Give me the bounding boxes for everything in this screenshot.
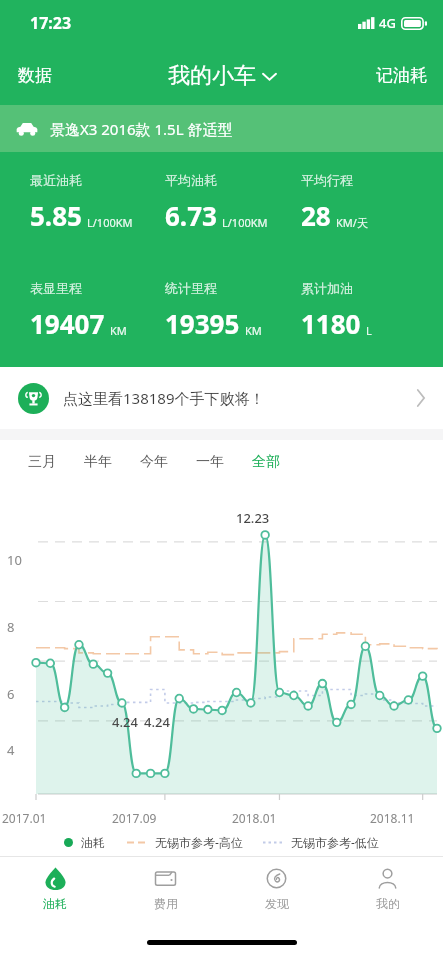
staticText: 累计加油 xyxy=(301,280,353,296)
staticText: 19407 xyxy=(30,306,105,341)
button[interactable]: 油耗 xyxy=(0,857,110,924)
staticText: L/100KM xyxy=(222,215,268,230)
staticText: 4G xyxy=(379,14,396,32)
button[interactable]: 点这里看138189个手下败将！ xyxy=(0,367,443,429)
staticText: 4.24 xyxy=(144,713,170,731)
staticText: 费用 xyxy=(154,896,178,911)
staticText: KM xyxy=(110,323,127,338)
staticText: 2017.01 xyxy=(2,810,47,826)
staticText: 发现 xyxy=(265,896,289,911)
staticText: 无锡市参考-高位 xyxy=(155,834,243,850)
staticText: 19395 xyxy=(165,306,240,341)
staticText: 油耗 xyxy=(81,835,105,850)
button[interactable]: 景逸X3 2016款 1.5L 舒适型 xyxy=(0,105,443,152)
button[interactable]: 三月 xyxy=(19,444,65,480)
button[interactable]: 一年 xyxy=(187,444,233,480)
staticText: 油耗 xyxy=(43,896,67,911)
staticText: 2017.09 xyxy=(112,810,157,826)
button[interactable]: 半年 xyxy=(75,444,121,480)
staticText: 6 xyxy=(7,685,15,703)
staticText: 数据 xyxy=(18,65,52,86)
staticText: 表显里程 xyxy=(30,280,82,296)
staticText: 我的 xyxy=(376,896,400,911)
staticText: 点这里看138189个手下败将！ xyxy=(63,388,265,408)
staticText: 4.24 xyxy=(112,713,138,731)
staticText: 17:23 xyxy=(30,12,72,34)
staticText: 2018.11 xyxy=(370,810,415,826)
staticText: 12.23 xyxy=(236,509,270,527)
button[interactable]: 我的小车 xyxy=(158,54,286,98)
staticText: 无锡市参考-低位 xyxy=(291,834,379,850)
staticText: 景逸X3 2016款 1.5L 舒适型 xyxy=(50,119,233,139)
staticText: 今年 xyxy=(140,453,168,471)
staticText: 1180 xyxy=(301,306,361,341)
staticText: 全部 xyxy=(252,453,280,471)
staticText: 半年 xyxy=(84,453,112,471)
staticText: 统计里程 xyxy=(165,280,217,296)
staticText: 28 xyxy=(301,198,331,233)
staticText: 记油耗 xyxy=(376,65,427,86)
button[interactable]: 全部 xyxy=(243,444,289,480)
staticText: KM/天 xyxy=(336,215,368,230)
button[interactable]: 费用 xyxy=(110,857,221,924)
staticText: 三月 xyxy=(28,453,56,471)
staticText: 最近油耗 xyxy=(30,172,82,188)
staticText: L/100KM xyxy=(87,215,133,230)
button[interactable]: 我的 xyxy=(332,857,443,924)
staticText: 8 xyxy=(7,618,15,636)
staticText: 平均行程 xyxy=(301,172,353,188)
staticText: 4 xyxy=(7,741,15,759)
button[interactable]: 记油耗 xyxy=(360,53,443,98)
staticText: 2018.01 xyxy=(232,810,277,826)
staticText: 我的小车 xyxy=(168,62,256,90)
button[interactable]: 发现 xyxy=(221,857,332,924)
staticText: 平均油耗 xyxy=(165,172,217,188)
button[interactable]: 数据 xyxy=(0,53,70,98)
staticText: 6.73 xyxy=(165,198,217,233)
staticText: 一年 xyxy=(196,453,224,471)
staticText: 10 xyxy=(7,551,22,569)
staticText: L xyxy=(366,323,372,338)
staticText: 5.85 xyxy=(30,198,82,233)
button[interactable]: 今年 xyxy=(131,444,177,480)
staticText: KM xyxy=(245,323,262,338)
